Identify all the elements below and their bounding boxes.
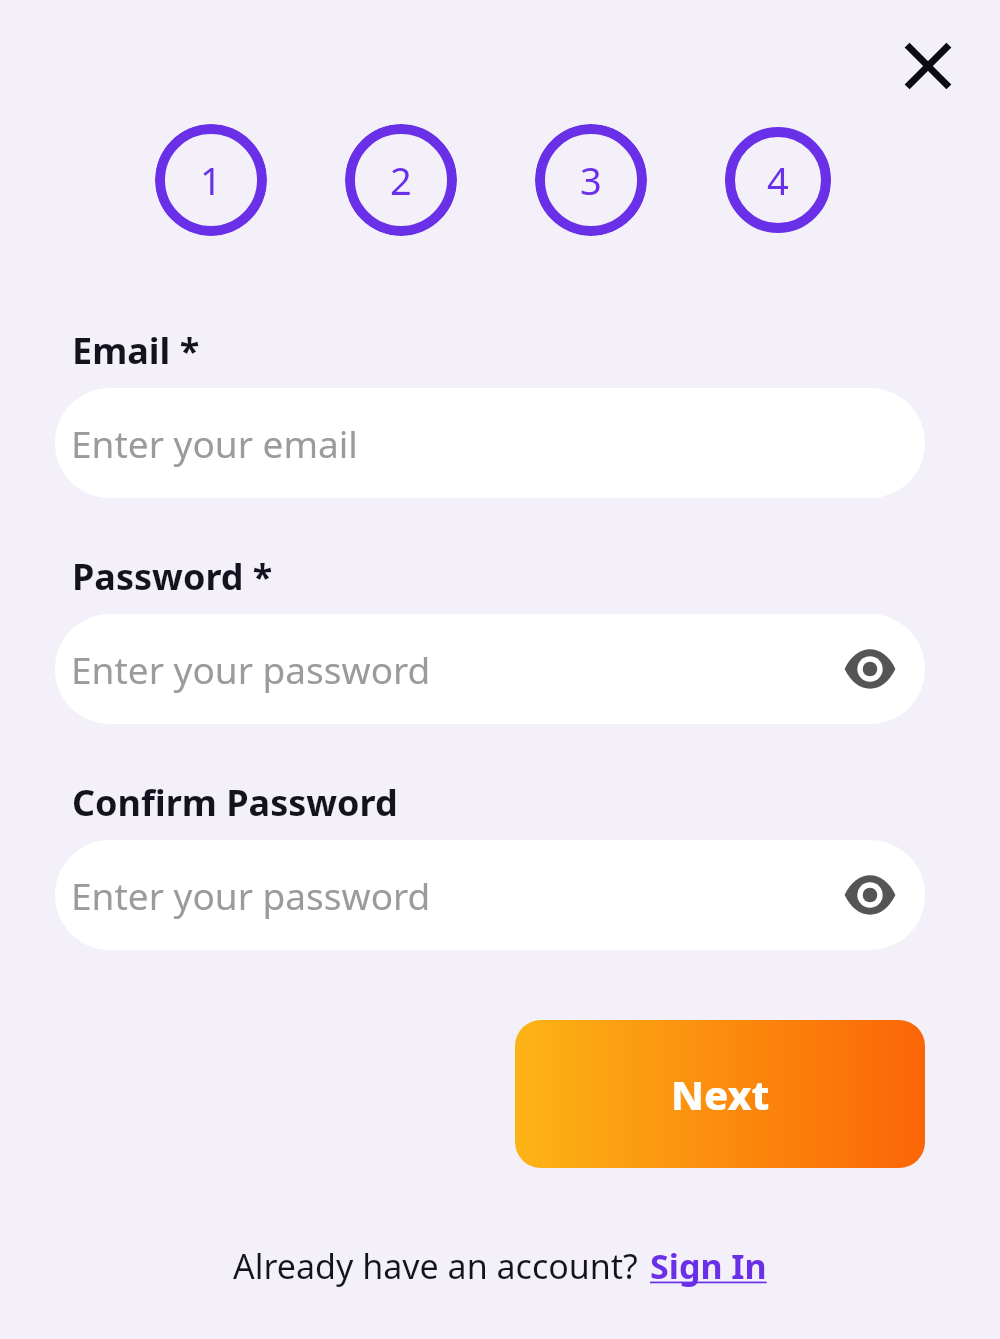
button[interactable]: 3: [535, 124, 647, 236]
button[interactable]: Enter your password: [55, 840, 925, 950]
staticText: Already have an account?: [233, 1243, 638, 1289]
button[interactable]: 4: [725, 124, 831, 236]
button[interactable]: Enter your password: [55, 614, 925, 724]
staticText: 1: [200, 154, 222, 206]
button[interactable]: Show password: [829, 628, 911, 710]
staticText: Enter your email: [71, 418, 358, 468]
staticText: Confirm Password: [72, 778, 398, 827]
staticText: 3: [580, 154, 602, 206]
staticText: Email *: [72, 326, 200, 375]
staticText: Enter your password: [71, 644, 431, 694]
button[interactable]: Close: [893, 31, 963, 101]
button[interactable]: Sign In: [650, 1243, 767, 1289]
staticText: Sign In: [650, 1243, 767, 1289]
staticText: 4: [767, 154, 789, 206]
button[interactable]: Show password: [829, 854, 911, 936]
button[interactable]: 2: [345, 124, 457, 236]
button[interactable]: Enter your email: [55, 388, 925, 498]
staticText: Enter your password: [71, 870, 431, 920]
button[interactable]: 1: [155, 124, 267, 236]
button[interactable]: Next: [515, 1020, 925, 1168]
staticText: Password *: [72, 552, 273, 601]
staticText: 2: [390, 154, 412, 206]
staticText: Next: [671, 1067, 770, 1121]
